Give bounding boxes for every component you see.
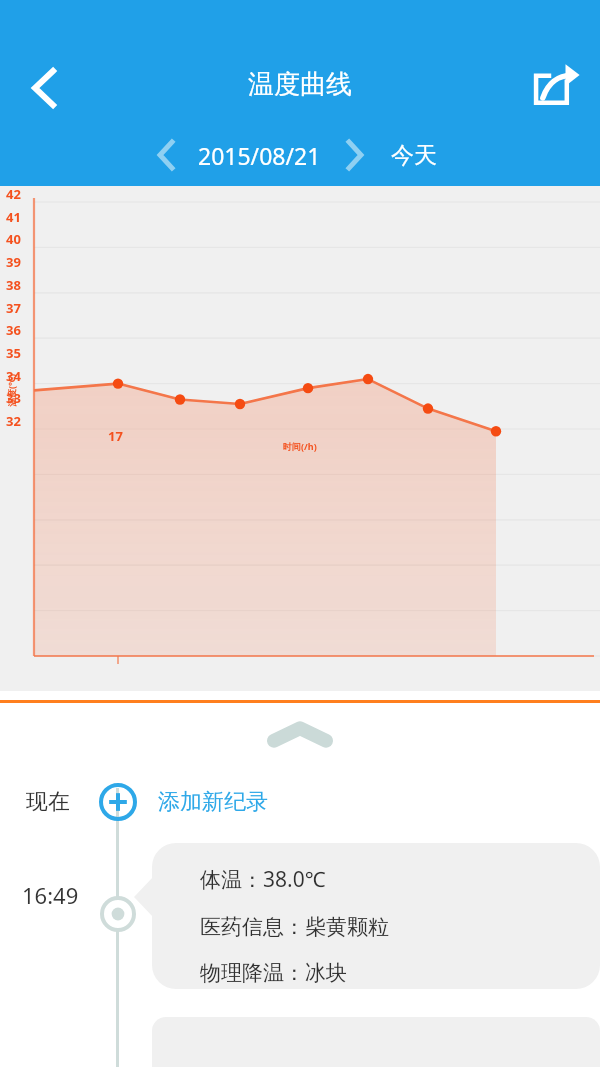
staticText: 39 xyxy=(6,253,21,271)
button[interactable]: 今天 xyxy=(387,137,441,174)
staticText: 35 xyxy=(6,344,21,362)
staticText: 42 xyxy=(6,185,21,203)
button[interactable]: Add record xyxy=(99,783,137,821)
staticText: 时间(/h) xyxy=(283,440,317,452)
staticText: 温度曲线 xyxy=(248,68,352,101)
button[interactable]: Next day xyxy=(337,133,373,177)
button[interactable]: Previous day xyxy=(148,133,184,177)
staticText: 33 xyxy=(6,389,21,407)
staticText: 38 xyxy=(6,276,21,294)
staticText: 现在 xyxy=(26,788,70,816)
staticText: 34 xyxy=(6,367,21,385)
button[interactable]: Back xyxy=(6,50,82,126)
staticText: 41 xyxy=(6,208,21,226)
button[interactable]: Share xyxy=(522,54,586,118)
staticText: 今天 xyxy=(391,141,437,170)
staticText: 温度(℃) xyxy=(5,373,17,407)
staticText: 医药信息：柴黄颗粒 xyxy=(200,914,389,940)
staticText: 体温：38.0℃ xyxy=(200,865,326,894)
staticText: 添加新纪录 xyxy=(158,788,268,816)
staticText: 36 xyxy=(6,321,21,339)
staticText: 37 xyxy=(6,299,21,317)
staticText: 2015/08/21 xyxy=(198,140,321,171)
button[interactable]: 添加新纪录 xyxy=(152,782,274,822)
staticText: 32 xyxy=(6,412,21,430)
staticText: 17 xyxy=(108,427,123,445)
staticText: 16:49 xyxy=(22,880,79,910)
staticText: 物理降温：冰块 xyxy=(200,960,347,986)
button[interactable]: Collapse chart xyxy=(269,722,331,748)
staticText: 40 xyxy=(6,230,21,248)
